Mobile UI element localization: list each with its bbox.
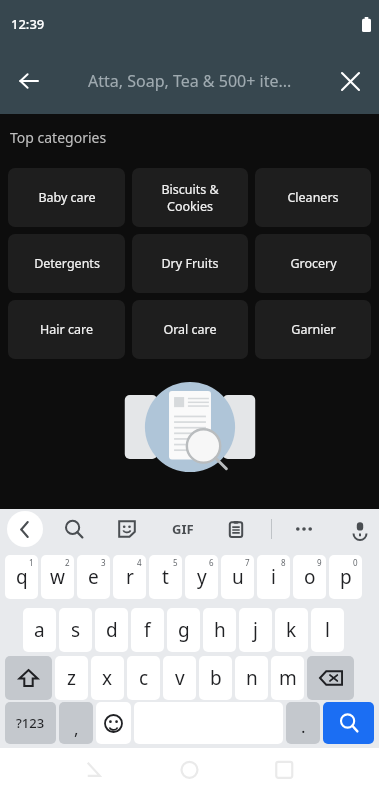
staticText: Grocery: [290, 255, 337, 272]
staticText: n: [246, 665, 258, 691]
staticText: b: [210, 665, 222, 691]
button[interactable]: Oral care: [132, 300, 248, 359]
staticText: Hair care: [40, 321, 93, 338]
button[interactable]: Clipboard: [219, 512, 253, 546]
button[interactable]: Grocery: [255, 234, 371, 293]
button[interactable]: r: [113, 555, 146, 599]
staticText: h: [214, 617, 226, 643]
button[interactable]: f: [131, 608, 164, 652]
button[interactable]: g: [167, 608, 200, 652]
button[interactable]: Search: [57, 512, 91, 546]
staticText: s: [71, 617, 81, 643]
staticText: Garnier: [291, 321, 336, 338]
staticText: x: [102, 665, 113, 691]
button[interactable]: Search: [323, 702, 374, 744]
staticText: Dry Fruits: [161, 255, 219, 272]
staticText: Baby care: [38, 189, 96, 206]
button[interactable]: n: [235, 656, 268, 700]
button[interactable]: i: [257, 555, 290, 599]
staticText: 0: [353, 557, 358, 568]
button[interactable]: [5, 656, 52, 700]
staticText: 4: [137, 557, 142, 568]
button[interactable]: c: [127, 656, 160, 700]
button[interactable]: Cleaners: [255, 168, 371, 227]
button[interactable]: Biscuits & Cookies: [132, 168, 248, 227]
staticText: k: [286, 617, 297, 643]
staticText: o: [304, 564, 316, 590]
button[interactable]: q: [5, 555, 38, 599]
staticText: j: [253, 617, 258, 643]
staticText: u: [232, 564, 244, 590]
staticText: g: [178, 617, 190, 643]
staticText: y: [197, 564, 207, 590]
staticText: a: [34, 617, 45, 643]
button[interactable]: Back: [10, 63, 46, 99]
button[interactable]: j: [239, 608, 272, 652]
button[interactable]: .: [286, 702, 320, 744]
staticText: 3: [101, 557, 106, 568]
staticText: c: [139, 665, 149, 691]
button[interactable]: ?123: [5, 702, 56, 744]
staticText: ?123: [16, 714, 45, 732]
button[interactable]: l: [311, 608, 344, 652]
button[interactable]: e: [77, 555, 110, 599]
button[interactable]: h: [203, 608, 236, 652]
button[interactable]: t: [149, 555, 182, 599]
button[interactable]: Baby care: [8, 168, 125, 227]
staticText: Top categories: [10, 128, 107, 147]
button[interactable]: p: [329, 555, 362, 599]
staticText: .: [301, 715, 306, 738]
button[interactable]: Stickers: [110, 512, 144, 546]
button[interactable]: Close toolbar: [7, 511, 43, 547]
button[interactable]: Clear search: [333, 64, 367, 98]
button[interactable]: x: [91, 656, 124, 700]
button[interactable]: o: [293, 555, 326, 599]
button[interactable]: b: [199, 656, 232, 700]
button[interactable]: Dry Fruits: [132, 234, 248, 293]
staticText: 9: [317, 557, 322, 568]
staticText: 5: [173, 557, 178, 568]
staticText: l: [325, 617, 330, 643]
button[interactable]: z: [55, 656, 88, 700]
staticText: e: [88, 564, 99, 590]
button[interactable]: v: [163, 656, 196, 700]
button[interactable]: Voice input: [343, 512, 377, 546]
staticText: v: [175, 665, 185, 691]
button[interactable]: GIF: [163, 512, 203, 546]
staticText: m: [279, 665, 297, 691]
button[interactable]: Detergents: [8, 234, 125, 293]
staticText: 2: [65, 557, 70, 568]
button[interactable]: k: [275, 608, 308, 652]
staticText: Cleaners: [287, 189, 339, 206]
button[interactable]: More options: [287, 512, 321, 546]
button[interactable]: [307, 656, 354, 700]
staticText: p: [340, 564, 352, 590]
staticText: ,: [74, 717, 79, 740]
button[interactable]: u: [221, 555, 254, 599]
staticText: Detergents: [34, 255, 100, 272]
staticText: t: [162, 564, 169, 590]
button[interactable]: y: [185, 555, 218, 599]
staticText: Oral care: [163, 321, 217, 338]
staticText: Atta, Soap, Tea & 500+ ite...: [88, 70, 292, 92]
staticText: q: [16, 564, 28, 590]
staticText: r: [126, 564, 134, 590]
button[interactable]: w: [41, 555, 74, 599]
button[interactable]: Garnier: [255, 300, 371, 359]
staticText: 8: [281, 557, 286, 568]
staticText: Biscuits & Cookies: [161, 181, 219, 214]
button[interactable]: ,: [59, 702, 93, 744]
button[interactable]: Hair care: [8, 300, 125, 359]
button[interactable]: s: [59, 608, 92, 652]
staticText: f: [144, 617, 151, 643]
staticText: w: [50, 564, 65, 590]
staticText: 6: [209, 557, 214, 568]
staticText: 12:39: [11, 15, 45, 33]
staticText: 1: [29, 557, 34, 568]
staticText: 7: [245, 557, 250, 568]
button[interactable]: [96, 702, 131, 744]
button[interactable]: m: [271, 656, 304, 700]
button[interactable]: a: [23, 608, 56, 652]
button[interactable]: d: [95, 608, 128, 652]
